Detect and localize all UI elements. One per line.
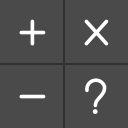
button[interactable]: Multiplication: [64, 0, 128, 64]
button[interactable]: Subtraction: [0, 64, 64, 128]
button[interactable]: Mixed practice: [64, 64, 128, 128]
button[interactable]: Addition: [0, 0, 64, 64]
